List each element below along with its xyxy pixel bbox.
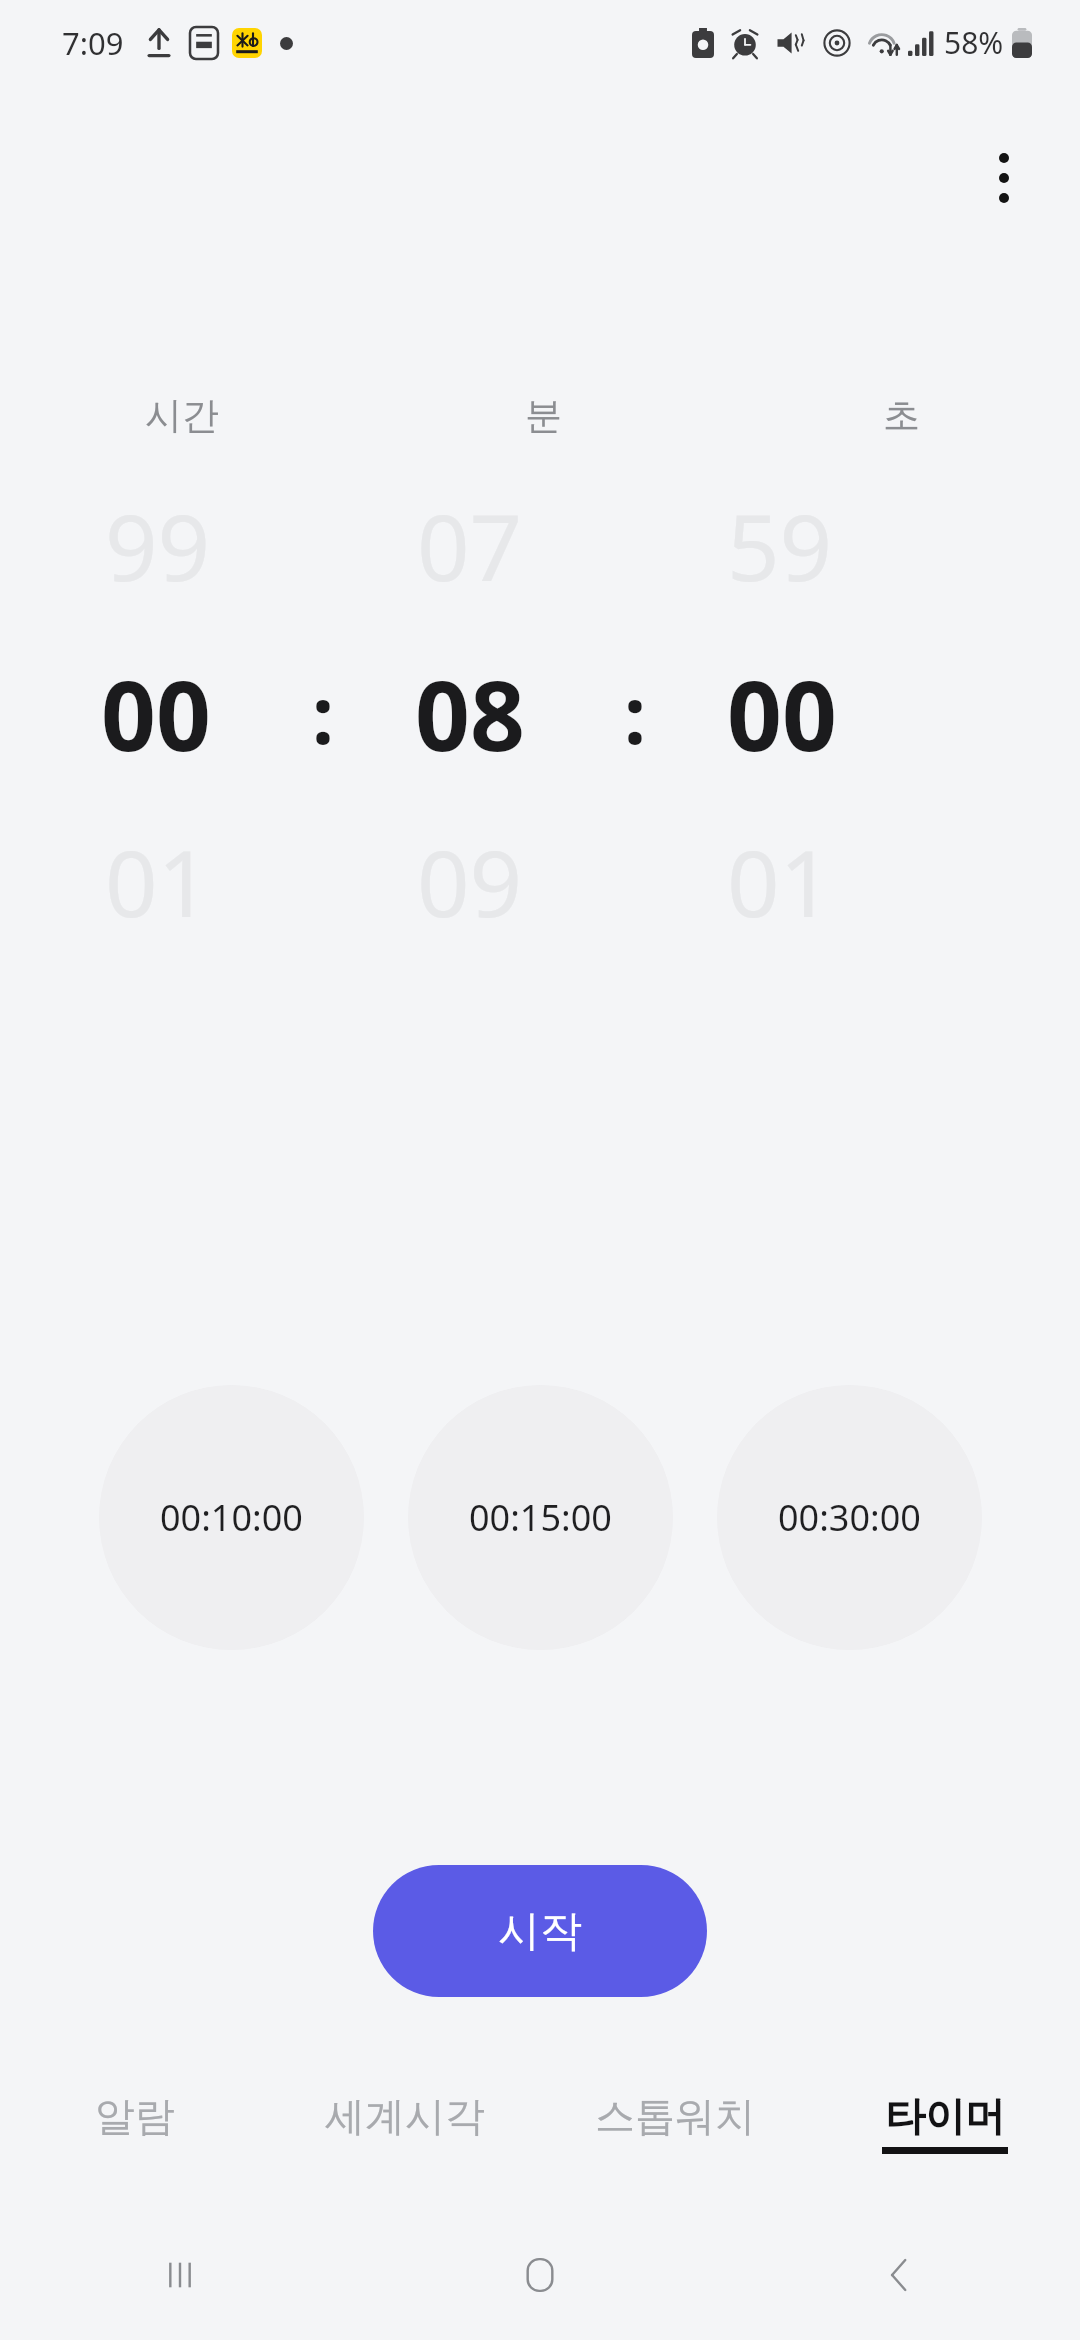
staticText: 00:15:00 [469,1493,612,1542]
staticText: 세계시각 [325,2091,485,2141]
staticText: 01 [105,819,211,944]
button[interactable]: 시작 [373,1865,707,1997]
button[interactable]: Home [360,2210,720,2340]
button[interactable]: 00:15:00 [408,1385,673,1650]
button[interactable]: 알람 [0,2075,270,2195]
staticText: 초 [883,392,920,439]
button[interactable]: More options [956,130,1052,226]
staticText: 스톱워치 [595,2091,755,2141]
staticText: 시간 [145,392,219,439]
staticText: 00:10:00 [160,1493,303,1542]
button[interactable]: 00 [628,648,936,779]
staticText: 시작 [498,1905,582,1958]
staticText: 58% [944,22,1004,63]
button[interactable]: 08 [316,648,624,779]
staticText: 00:30:00 [778,1493,921,1542]
button[interactable]: 타이머 [810,2075,1080,2195]
button[interactable]: 스톱워치 [540,2075,810,2195]
staticText: 07 [417,483,523,608]
button[interactable]: Recent apps [0,2210,360,2340]
staticText: 59 [727,483,833,608]
button[interactable]: Back [720,2210,1080,2340]
staticText: 분 [525,392,562,439]
staticText: 00 [727,648,837,779]
staticText: 00 [101,648,211,779]
staticText: 08 [415,648,525,779]
button[interactable]: 00:30:00 [717,1385,982,1650]
staticText: 99 [105,483,211,608]
button[interactable]: 00:10:00 [99,1385,364,1650]
button[interactable]: 세계시각 [270,2075,540,2195]
staticText: 알람 [95,2091,175,2141]
button[interactable]: 00 [0,648,312,779]
staticText: 09 [417,819,523,944]
staticText: 01 [727,819,833,944]
staticText: 타이머 [885,2091,1005,2141]
staticText: 7:09 [62,22,124,64]
